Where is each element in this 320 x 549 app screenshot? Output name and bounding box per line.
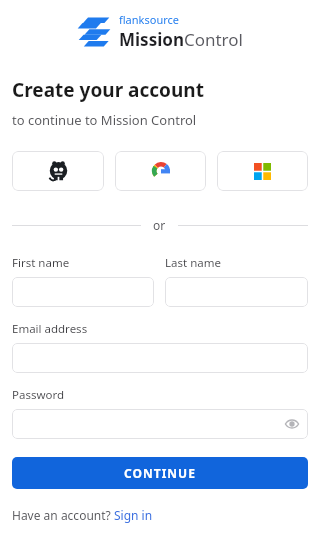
staticText: Create your account (12, 77, 204, 103)
staticText: First name (12, 255, 70, 271)
button[interactable]: Show password (284, 416, 300, 432)
button[interactable]: Sign up with GitHub (12, 151, 104, 191)
staticText: CONTINUE (124, 465, 196, 481)
staticText: or (153, 217, 166, 233)
button[interactable]: Show password (12, 409, 308, 439)
button[interactable]: Sign in (114, 507, 153, 523)
staticText: flanksource (119, 12, 179, 27)
button[interactable]: Sign up with Google (115, 151, 206, 191)
button[interactable] (12, 277, 154, 307)
button[interactable] (12, 343, 308, 373)
staticText: to continue to Mission Control (12, 111, 197, 129)
button[interactable]: CONTINUE (12, 457, 308, 489)
staticText: Email address (12, 321, 88, 337)
staticText: Password (12, 387, 65, 403)
button[interactable]: Sign up with Microsoft (217, 151, 308, 191)
staticText: Last name (165, 255, 221, 271)
button[interactable] (165, 277, 308, 307)
staticText: MissionControl (119, 28, 243, 51)
staticText: Sign in (114, 507, 153, 523)
staticText: Have an account? (12, 507, 114, 523)
